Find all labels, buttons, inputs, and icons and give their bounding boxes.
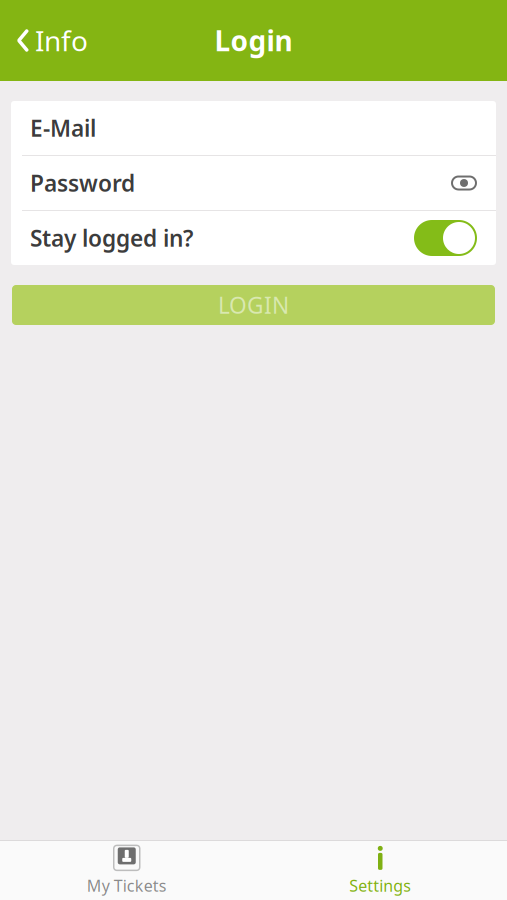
- button[interactable]: Stay logged in?: [11, 211, 496, 265]
- staticText: LOGIN: [218, 290, 289, 320]
- button[interactable]: Settings: [253, 841, 507, 900]
- staticText: Password: [30, 168, 135, 198]
- button[interactable]: Info: [0, 14, 100, 67]
- staticText: E-Mail: [30, 113, 96, 143]
- staticText: Stay logged in?: [30, 223, 193, 253]
- staticText: My Tickets: [87, 875, 167, 896]
- button[interactable]: LOGIN: [12, 285, 495, 325]
- staticText: Login: [214, 22, 292, 59]
- button[interactable]: E-Mail: [11, 101, 496, 155]
- staticText: Settings: [349, 875, 411, 896]
- button[interactable]: My Tickets: [0, 841, 253, 900]
- staticText: Info: [35, 22, 88, 59]
- button[interactable]: Password: [11, 156, 496, 210]
